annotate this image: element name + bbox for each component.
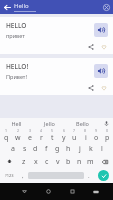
staticText: Hell <box>11 120 22 127</box>
staticText: 0 <box>106 128 109 133</box>
button[interactable]: f <box>41 142 52 155</box>
button[interactable]: Share <box>85 41 96 52</box>
staticText: u <box>72 133 77 142</box>
button[interactable]: Symbols <box>1 168 18 183</box>
button[interactable]: HELLO <box>0 17 113 54</box>
button[interactable]: c <box>41 155 52 168</box>
button[interactable]: Switch keyboard <box>84 183 108 200</box>
button[interactable]: Hell <box>0 118 33 128</box>
button[interactable]: 7 <box>69 128 80 142</box>
staticText: g <box>55 144 60 154</box>
button[interactable]: j <box>74 142 85 155</box>
staticText: Привет! <box>6 73 27 80</box>
staticText: . <box>88 172 90 180</box>
button[interactable]: 0 <box>102 128 113 142</box>
button[interactable]: Enter <box>94 168 112 183</box>
staticText: t <box>51 133 54 142</box>
button[interactable]: s <box>19 142 30 155</box>
staticText: n <box>77 157 82 167</box>
staticText: i <box>85 133 87 142</box>
staticText: y <box>62 133 66 142</box>
button[interactable]: Shift <box>0 155 18 168</box>
button[interactable]: Backspace <box>96 155 113 168</box>
staticText: j <box>79 144 81 154</box>
button[interactable]: 6 <box>58 128 69 142</box>
staticText: 6 <box>63 128 66 133</box>
button[interactable]: Bello <box>66 118 99 128</box>
staticText: o <box>94 133 99 142</box>
staticText: r <box>40 133 43 142</box>
button[interactable]: 3 <box>24 128 36 142</box>
button[interactable]: h <box>63 142 74 155</box>
button[interactable]: b <box>63 155 74 168</box>
button[interactable]: 9 <box>91 128 102 142</box>
button[interactable]: l <box>96 142 107 155</box>
button[interactable]: n <box>74 155 85 168</box>
button[interactable]: Clear <box>99 0 113 14</box>
button[interactable]: z <box>18 155 30 168</box>
staticText: Hello <box>14 2 29 10</box>
button[interactable]: Favorite <box>98 41 109 52</box>
button[interactable]: v <box>52 155 63 168</box>
staticText: 1 <box>5 128 8 133</box>
button[interactable]: Back <box>13 183 36 200</box>
button[interactable]: Play pronunciation <box>94 64 108 78</box>
button[interactable]: Voice input <box>99 118 113 128</box>
staticText: a <box>11 144 15 154</box>
staticText: c <box>45 157 49 167</box>
button[interactable]: , <box>18 168 28 183</box>
staticText: 9 <box>95 128 98 133</box>
button[interactable]: Jello <box>33 118 66 128</box>
staticText: 7 <box>73 128 76 133</box>
staticText: HELLO <box>6 21 27 30</box>
staticText: 2 <box>17 128 20 133</box>
staticText: ?123 <box>5 173 14 178</box>
staticText: w <box>15 133 21 142</box>
button[interactable]: Hello <box>14 0 99 14</box>
button[interactable]: Share <box>85 82 96 93</box>
staticText: e <box>28 133 32 142</box>
staticText: b <box>66 157 71 167</box>
staticText: d <box>33 144 38 154</box>
staticText: 5 <box>51 128 54 133</box>
button[interactable]: k <box>85 142 96 155</box>
staticText: q <box>4 133 9 142</box>
button[interactable]: Back <box>0 0 14 14</box>
button[interactable]: HELLO! <box>0 58 113 95</box>
staticText: v <box>56 157 60 167</box>
button[interactable]: m <box>85 155 96 168</box>
button[interactable]: a <box>7 142 19 155</box>
button[interactable]: Home <box>36 183 60 200</box>
staticText: Jello <box>44 120 55 127</box>
button[interactable]: g <box>52 142 63 155</box>
staticText: z <box>22 157 26 167</box>
button[interactable]: 4 <box>36 128 47 142</box>
staticText: m <box>87 157 94 167</box>
button[interactable]: . <box>84 168 94 183</box>
staticText: l <box>101 144 103 154</box>
staticText: , <box>22 172 24 180</box>
button[interactable]: 8 <box>80 128 91 142</box>
staticText: s <box>23 144 27 154</box>
staticText: p <box>105 133 110 142</box>
button[interactable]: Favorite <box>98 82 109 93</box>
staticText: f <box>45 144 48 154</box>
button[interactable]: 2 <box>12 128 24 142</box>
button[interactable]: 1 <box>0 128 12 142</box>
button[interactable]: x <box>30 155 41 168</box>
staticText: Bello <box>76 120 89 127</box>
staticText: 3 <box>29 128 32 133</box>
button[interactable]: d <box>30 142 41 155</box>
button[interactable]: Play pronunciation <box>94 23 108 37</box>
staticText: 4 <box>40 128 43 133</box>
staticText: 8 <box>84 128 87 133</box>
staticText: h <box>66 144 71 154</box>
staticText: x <box>34 157 38 167</box>
button[interactable]: 5 <box>47 128 58 142</box>
button[interactable]: Recents <box>60 183 84 200</box>
staticText: k <box>89 144 93 154</box>
staticText: привет <box>6 32 25 39</box>
staticText: HELLO! <box>6 62 29 71</box>
